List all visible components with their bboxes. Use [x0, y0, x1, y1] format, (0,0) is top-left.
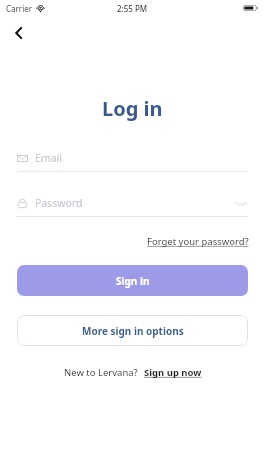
staticText: Sign up now: [144, 366, 202, 379]
button[interactable]: Password: [17, 193, 248, 217]
staticText: Sign in: [116, 274, 150, 288]
staticText: Carrier: [6, 3, 33, 14]
button[interactable]: Sign up now: [144, 366, 202, 379]
button[interactable]: Show password: [234, 196, 248, 210]
staticText: Forget your password?: [147, 235, 249, 248]
staticText: New to Lervana?: [64, 366, 138, 379]
staticText: Log in: [102, 95, 163, 122]
staticText: Email: [35, 151, 62, 165]
staticText: 2:55 PM: [117, 3, 148, 14]
button[interactable]: Sign in: [17, 265, 248, 296]
staticText: More sign in options: [82, 324, 184, 338]
button[interactable]: Forget your password?: [147, 235, 249, 248]
button[interactable]: Back: [4, 18, 34, 48]
button[interactable]: Email: [17, 148, 248, 172]
staticText: Password: [35, 196, 83, 210]
button[interactable]: More sign in options: [17, 315, 248, 346]
